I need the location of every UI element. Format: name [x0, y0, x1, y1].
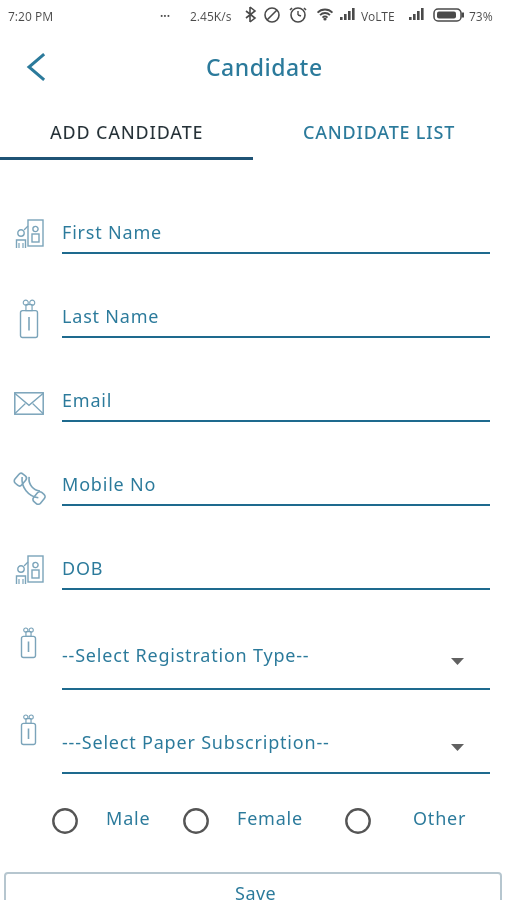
button[interactable]	[342, 805, 374, 837]
staticText: 7:20 PM	[8, 8, 54, 24]
staticText: ...	[160, 4, 171, 20]
staticText: Last Name	[62, 304, 160, 329]
staticText: Mobile No	[62, 472, 157, 497]
button[interactable]: ADD CANDIDATE	[0, 105, 253, 160]
button[interactable]	[180, 805, 212, 837]
staticText: 73%	[469, 8, 493, 24]
staticText: Email	[62, 388, 113, 413]
staticText: First Name	[62, 220, 162, 245]
staticText: Candidate	[206, 51, 323, 82]
staticText: CANDIDATE LIST	[303, 120, 456, 145]
staticText: Save	[235, 881, 277, 900]
staticText: VoLTE	[361, 8, 395, 24]
staticText: --Select Registration Type--	[62, 643, 310, 668]
staticText: ---Select Paper Subscription--	[62, 730, 330, 755]
staticText: DOB	[62, 556, 104, 581]
staticText: Female	[237, 806, 304, 831]
button[interactable]	[16, 47, 56, 87]
button[interactable]: Save	[5, 873, 501, 900]
staticText: ADD CANDIDATE	[50, 120, 204, 145]
staticText: Male	[106, 806, 151, 831]
staticText: Other	[413, 806, 467, 831]
staticText: 2.45K/s	[190, 8, 232, 24]
button[interactable]	[49, 805, 81, 837]
button[interactable]: CANDIDATE LIST	[253, 105, 506, 160]
